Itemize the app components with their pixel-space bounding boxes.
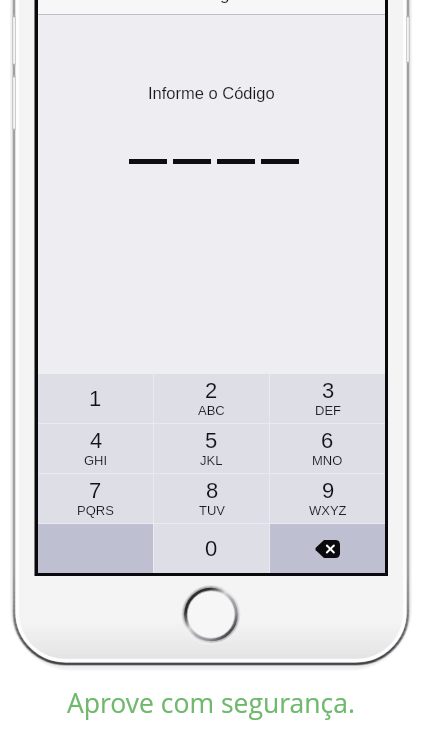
button[interactable]: 1 [38,374,153,423]
staticText: 2 [205,378,218,403]
staticText: 1 [89,386,102,411]
button[interactable]: 0 [154,524,269,573]
button[interactable]: 2 [154,374,269,423]
staticText: 6 [321,428,334,453]
staticText: DEF [315,403,341,418]
staticText: 0 [205,536,218,561]
staticText: 3 [322,378,335,403]
button[interactable]: 6 [270,424,385,473]
staticText: JKL [200,453,223,468]
staticText: WXYZ [309,503,347,518]
staticText: TUV [199,503,225,518]
button[interactable]: 7 [38,474,153,523]
staticText: ABC [198,403,225,418]
button[interactable]: 3 [270,374,385,423]
staticText: Informe o Código [148,84,275,102]
button[interactable]: 4 [38,424,153,473]
staticText: 8 [206,478,219,503]
staticText: Aprove com segurança. [67,685,355,721]
staticText: Código [185,0,239,4]
staticText: GHI [84,453,108,468]
button[interactable]: 9 [270,474,385,523]
button[interactable]: Backspace [270,524,385,573]
button[interactable]: 8 [154,474,269,523]
staticText: 4 [90,428,103,453]
staticText: 7 [89,478,102,503]
staticText: 9 [322,478,335,503]
staticText: PQRS [77,503,114,518]
button[interactable]: 5 [154,424,269,473]
staticText: MNO [312,453,343,468]
staticText: 5 [205,428,218,453]
